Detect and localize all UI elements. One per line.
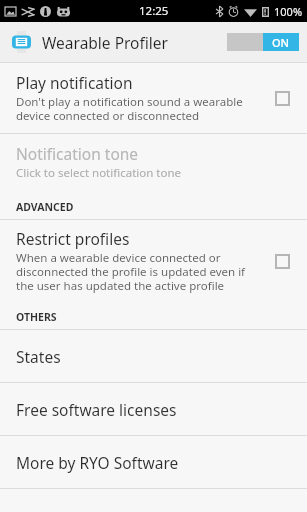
staticText: ADVANCED (16, 200, 74, 214)
button[interactable]: Toggle setting (269, 248, 295, 274)
staticText: ON (272, 35, 290, 50)
staticText: 12:25 (139, 3, 169, 19)
staticText: Click to select notification tone (16, 165, 182, 181)
button[interactable]: Play notification (0, 63, 307, 133)
staticText: States (16, 346, 61, 367)
staticText: Free software licenses (16, 399, 177, 420)
staticText: OTHERS (16, 310, 57, 324)
button[interactable]: More by RYO Software (0, 436, 307, 488)
button[interactable]: Toggle setting (269, 85, 295, 111)
button[interactable]: States (0, 330, 307, 382)
button[interactable]: Wearable Profiler (0, 25, 180, 59)
staticText: Play notification (16, 72, 133, 93)
button[interactable]: Free software licenses (0, 383, 307, 435)
button[interactable]: Restrict profiles (0, 220, 307, 302)
staticText: Don't play a notification sound a wearab… (16, 94, 243, 123)
staticText: More by RYO Software (16, 452, 179, 473)
staticText: Restrict profiles (16, 228, 130, 249)
staticText: Notification tone (16, 143, 139, 164)
staticText: Wearable Profiler (42, 32, 168, 53)
staticText: When a wearable device connected or disc… (16, 250, 246, 293)
button[interactable]: Notification tone (0, 134, 307, 192)
button[interactable]: Enable Wearable Profiler (227, 33, 299, 51)
staticText: 100% (274, 4, 303, 19)
